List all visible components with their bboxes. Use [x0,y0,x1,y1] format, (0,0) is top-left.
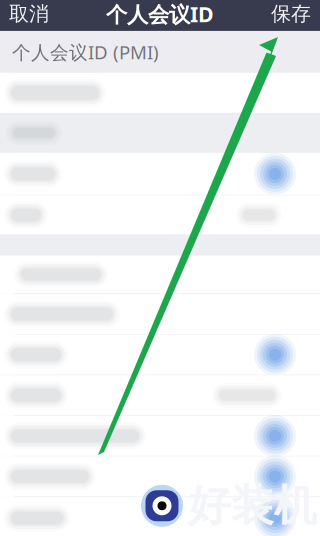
button[interactable] [0,375,320,415]
button[interactable] [0,335,320,375]
button[interactable] [0,416,320,456]
button[interactable] [0,294,320,334]
button[interactable]: 取消 [0,0,58,31]
staticText: 个人会议ID [106,0,214,28]
staticText: 个人会议ID (PMI) [12,39,159,64]
staticText: 好装机 [188,480,317,532]
staticText: 取消 [9,2,49,26]
button[interactable] [0,73,320,113]
button[interactable]: 保存 [262,0,320,31]
staticText: 保存 [271,2,311,26]
button[interactable] [0,255,320,293]
button[interactable] [0,195,320,234]
button[interactable] [0,497,320,536]
button[interactable] [0,456,320,496]
button[interactable] [0,153,320,195]
